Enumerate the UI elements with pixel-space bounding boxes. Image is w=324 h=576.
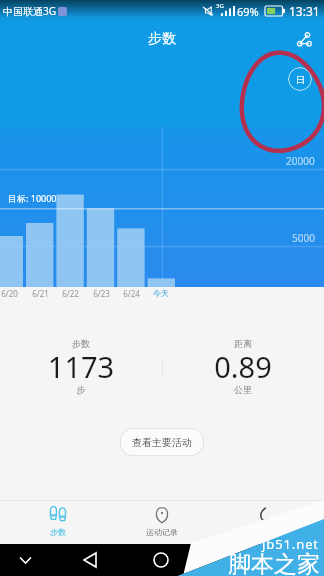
staticText: 6/21 xyxy=(32,288,49,299)
staticText: 公里 xyxy=(162,384,324,395)
staticText: 6/24 xyxy=(123,288,140,299)
staticText: 脚本之家 xyxy=(228,550,320,576)
staticText: 运动记录 xyxy=(126,527,198,537)
staticText: 中国联通3G xyxy=(3,4,56,18)
staticText: 日 xyxy=(296,74,305,85)
button[interactable]: 步数 xyxy=(22,501,94,544)
staticText: 目标: 10000 xyxy=(8,192,57,204)
staticText: 今天 xyxy=(153,288,169,298)
staticText: 步 xyxy=(0,384,162,395)
staticText: 13:31 xyxy=(289,3,320,19)
button[interactable]: More xyxy=(229,501,301,544)
staticText: 查看主要活动 xyxy=(132,436,192,449)
staticText: 步数 xyxy=(0,338,162,349)
staticText: 0.89 xyxy=(162,347,324,386)
staticText: 步数 xyxy=(148,30,176,48)
staticText: 1173 xyxy=(0,347,162,386)
button[interactable]: 查看主要活动 xyxy=(120,428,204,456)
staticText: 6/23 xyxy=(93,288,110,299)
staticText: 6/20 xyxy=(1,288,18,299)
staticText: 3G xyxy=(216,2,224,10)
staticText: jb51.net xyxy=(262,535,319,553)
staticText: 20000 xyxy=(286,154,315,168)
staticText: 6/22 xyxy=(62,288,79,299)
button[interactable]: Share xyxy=(289,24,319,54)
button[interactable]: Day view xyxy=(288,67,312,91)
button[interactable]: 运动记录 xyxy=(126,501,198,544)
staticText: 步数 xyxy=(22,527,94,537)
staticText: 69% xyxy=(237,4,259,19)
staticText: 5000 xyxy=(292,231,315,245)
staticText: 距离 xyxy=(162,338,324,349)
